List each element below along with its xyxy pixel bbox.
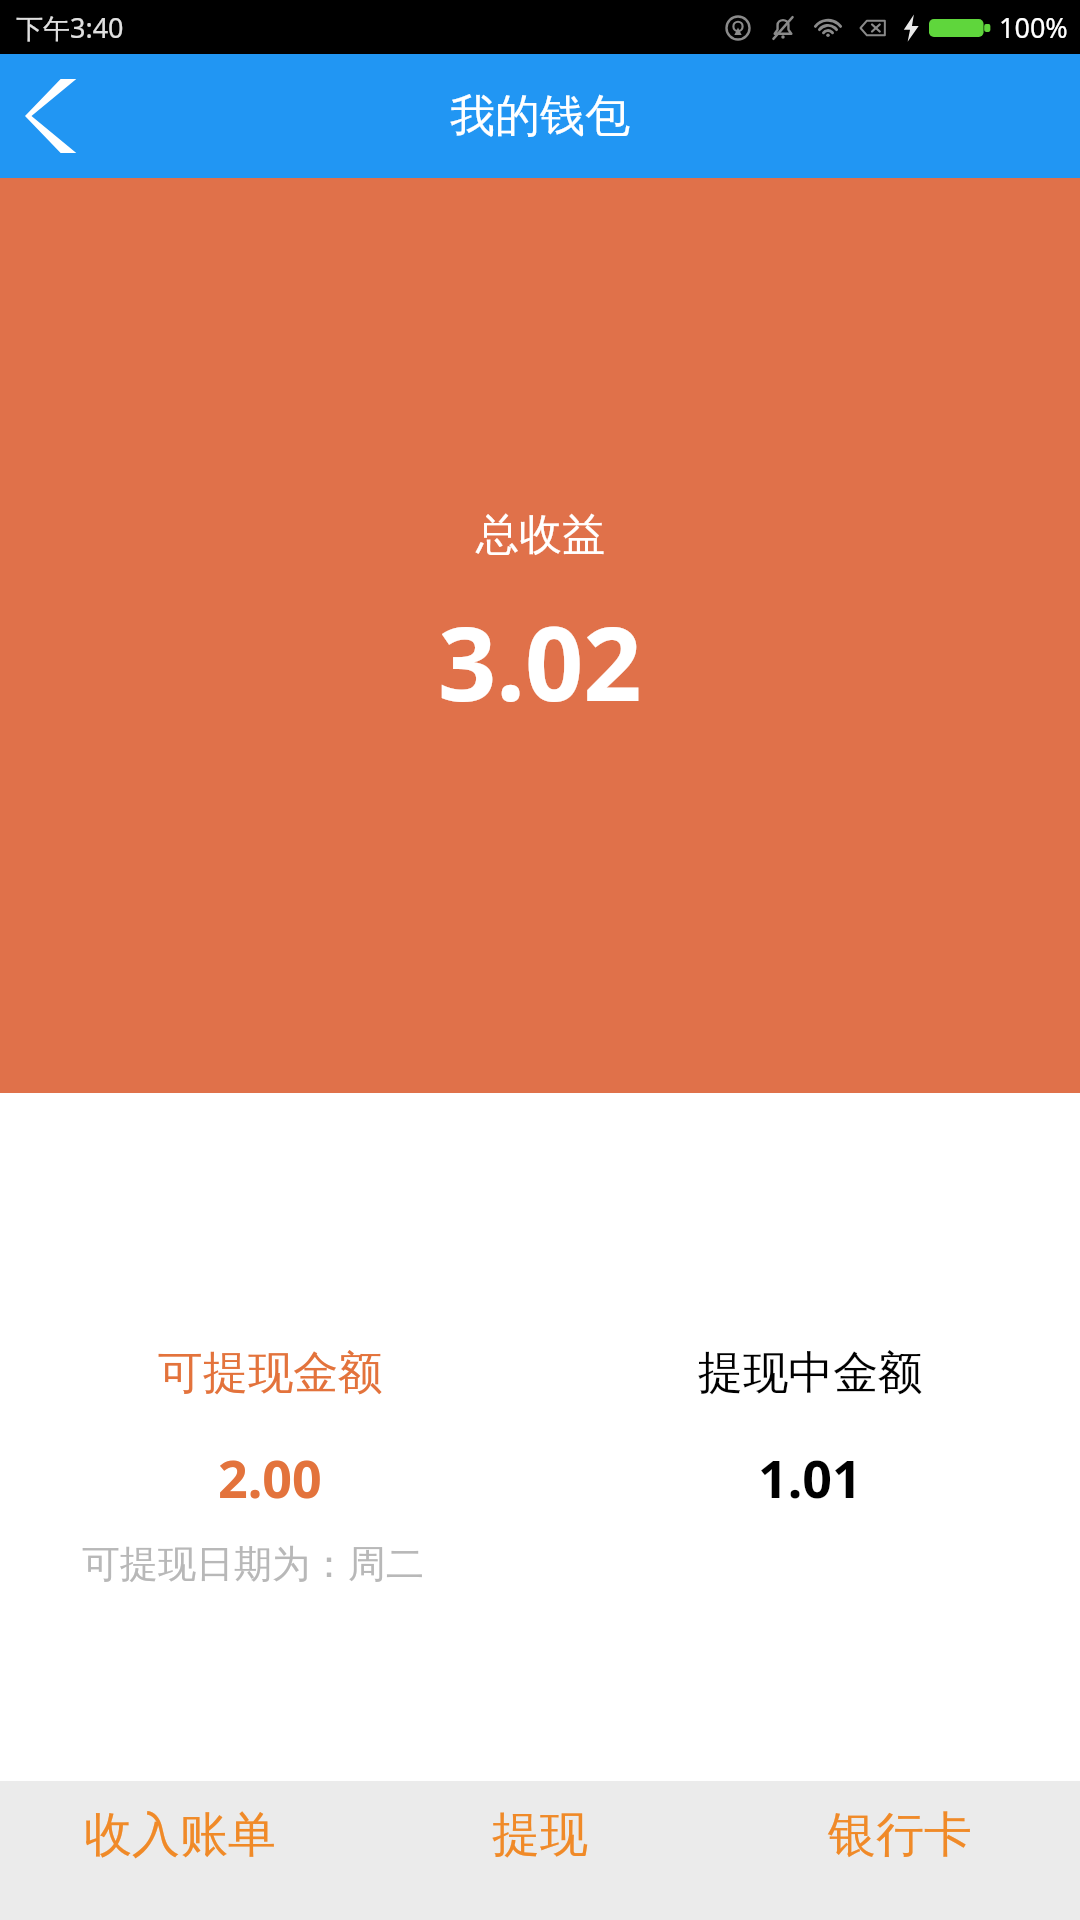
staticText: 收入账单: [84, 1805, 276, 1865]
staticText: 总收益: [476, 508, 605, 562]
button[interactable]: 收入账单: [0, 1781, 360, 1920]
button[interactable]: 银行卡: [720, 1781, 1080, 1920]
staticText: 提现中金额: [698, 1345, 923, 1402]
staticText: 100%: [999, 9, 1068, 46]
staticText: 可提现日期为：周二: [82, 1540, 424, 1588]
staticText: 1.01: [758, 1442, 862, 1513]
staticText: 下午3:40: [16, 9, 124, 46]
staticText: 可提现金额: [158, 1345, 383, 1402]
staticText: 银行卡: [828, 1805, 972, 1865]
staticText: 2.00: [218, 1442, 322, 1513]
staticText: 提现: [492, 1805, 588, 1865]
button[interactable]: 提现: [360, 1781, 720, 1920]
button[interactable]: Back: [0, 54, 104, 178]
staticText: 3.02: [438, 592, 642, 731]
staticText: 我的钱包: [450, 88, 630, 145]
